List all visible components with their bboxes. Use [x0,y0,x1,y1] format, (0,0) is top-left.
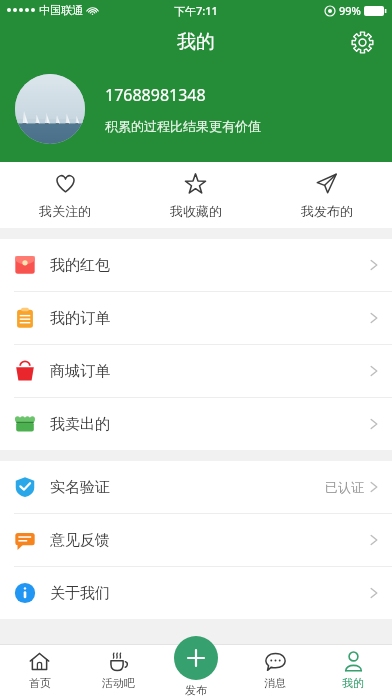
staticText: 已认证 [325,479,364,495]
staticText: 我的 [342,676,364,690]
staticText: 我收藏的 [170,203,222,219]
staticText: 我的 [177,30,215,54]
button[interactable]: 首页 [0,644,79,696]
staticText: 商城订单 [50,362,110,381]
staticText: 实名验证 [50,478,110,497]
button[interactable]: 我卖出的 [0,398,392,450]
staticText: 意见反馈 [50,531,110,550]
button[interactable]: 我的 [314,644,392,696]
staticText: 消息 [264,676,286,690]
button[interactable]: 我收藏的 [130,162,261,228]
button[interactable]: 实名验证 [0,461,392,514]
button[interactable]: 发布 [157,636,235,696]
button[interactable]: 我发布的 [261,162,392,228]
staticText: 99% [339,3,361,18]
button[interactable]: Settings [342,22,382,62]
button[interactable]: 消息 [236,644,314,696]
button[interactable]: 商城订单 [0,345,392,398]
staticText: 积累的过程比结果更有价值 [105,118,261,134]
staticText: 17688981348 [105,84,206,106]
staticText: 我关注的 [39,203,91,219]
staticText: 关于我们 [50,584,110,603]
staticText: 我卖出的 [50,415,110,434]
staticText: 我的订单 [50,309,110,328]
button[interactable]: 活动吧 [79,644,158,696]
staticText: 下午7:11 [174,3,218,18]
button[interactable]: 17688981348 [0,64,392,148]
staticText: 活动吧 [102,676,135,690]
button[interactable]: 意见反馈 [0,514,392,567]
button[interactable]: 我的红包 [0,239,392,292]
button[interactable]: 我的订单 [0,292,392,345]
staticText: 中国联通 [39,3,83,17]
staticText: 我的红包 [50,256,110,275]
button[interactable]: 关于我们 [0,567,392,619]
button[interactable]: 我关注的 [0,162,130,228]
staticText: 我发布的 [301,203,353,219]
staticText: 首页 [29,676,51,690]
staticText: 发布 [185,683,207,696]
